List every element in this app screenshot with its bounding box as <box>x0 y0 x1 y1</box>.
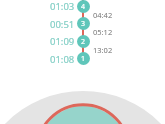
staticText: 13:02 <box>93 45 113 55</box>
staticText: 1 <box>81 54 86 64</box>
button[interactable]: Lap 3 <box>77 17 90 30</box>
staticText: 3 <box>81 19 86 29</box>
staticText: 2 <box>81 37 86 47</box>
staticText: 01:08 <box>50 53 75 66</box>
button[interactable]: Lap 1 <box>77 52 90 65</box>
staticText: 01:09 <box>50 35 75 48</box>
button[interactable]: Lap 4 <box>77 0 90 13</box>
staticText: 05:12 <box>93 27 113 37</box>
button[interactable]: Lap 2 <box>77 35 90 48</box>
staticText: 01:03 <box>50 0 75 13</box>
staticText: 4 <box>81 2 86 12</box>
staticText: 00:51 <box>50 18 75 31</box>
staticText: 04:42 <box>93 10 113 20</box>
